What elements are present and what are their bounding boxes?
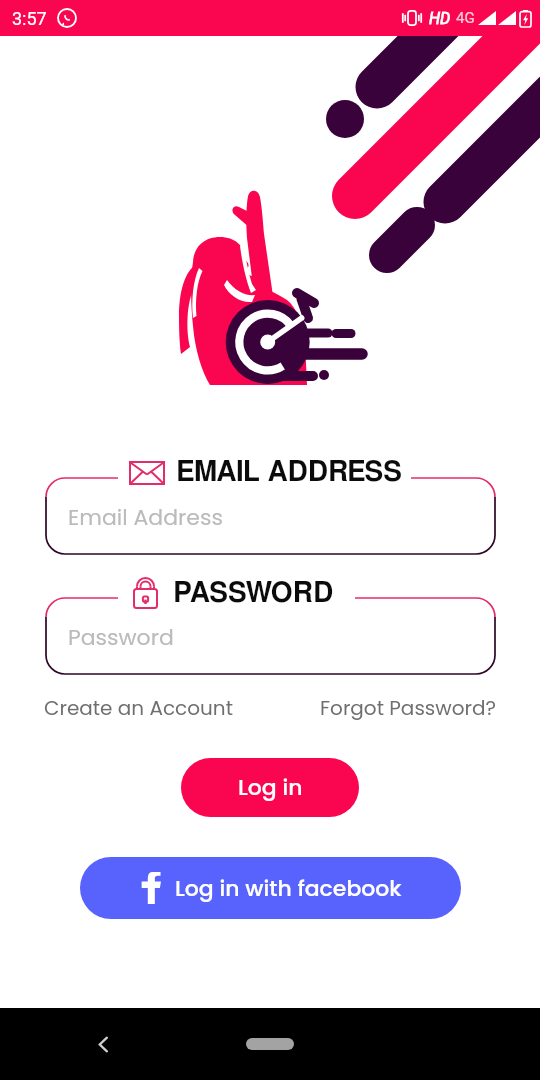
staticText: Password (68, 622, 174, 653)
staticText: Create an Account (44, 694, 233, 722)
staticText: HD (429, 9, 451, 28)
button[interactable]: Back (86, 1027, 120, 1061)
staticText: Log in (238, 772, 303, 803)
staticText: 3:57 (12, 8, 47, 29)
button[interactable]: Home (246, 1038, 294, 1050)
button[interactable]: Create an Account (44, 694, 233, 722)
staticText: Log in with facebook (175, 873, 402, 904)
button[interactable]: Forgot Password? (320, 694, 496, 722)
button[interactable]: Log in with facebook (80, 857, 461, 919)
staticText: PASSWORD (173, 580, 334, 608)
staticText: 4G (456, 9, 475, 27)
button[interactable]: Log in (181, 758, 359, 817)
staticText: EMAIL ADDRESS (176, 459, 403, 487)
staticText: Email Address (68, 502, 223, 533)
staticText: Forgot Password? (320, 694, 496, 722)
